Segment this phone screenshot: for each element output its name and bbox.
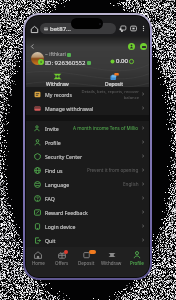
button[interactable]: Reward Feedback <box>26 205 149 219</box>
button[interactable]: Back <box>27 41 37 51</box>
staticText: English <box>123 181 139 187</box>
staticText: Invite <box>45 125 59 132</box>
staticText: FAQ <box>45 195 55 202</box>
staticText: Manage withdrawal <box>45 105 94 112</box>
button[interactable]: FAQ <box>26 191 149 205</box>
button[interactable]: Invite <box>26 121 149 135</box>
staticText: My records <box>45 91 73 98</box>
button[interactable]: Home <box>28 23 40 35</box>
button[interactable]: Deposit <box>74 247 99 268</box>
staticText: Quit <box>45 237 56 244</box>
staticText: Home <box>32 260 45 266</box>
staticText: Profile <box>130 260 144 266</box>
button[interactable]: Security Center <box>26 149 149 163</box>
button[interactable]: My records <box>26 87 149 101</box>
button[interactable]: bet87... <box>40 23 116 34</box>
staticText: Find us <box>45 167 63 174</box>
staticText: Details, bets, reports, recover balance <box>81 89 139 100</box>
staticText: ~ ifthkari <box>45 51 66 58</box>
button[interactable]: Login device <box>26 219 149 233</box>
button[interactable]: More options <box>139 24 148 33</box>
staticText: Login device <box>45 223 76 230</box>
staticText: Withdraw <box>46 81 69 88</box>
staticText: ID: 926360552 <box>45 59 86 67</box>
staticText: Offers <box>55 260 69 266</box>
button[interactable]: Deposit <box>94 71 134 88</box>
button[interactable]: Quit <box>26 233 149 247</box>
staticText: Security Center <box>45 153 83 160</box>
button[interactable]: Language <box>26 177 149 191</box>
button[interactable]: Support <box>128 43 135 50</box>
button[interactable]: Profile <box>26 135 149 149</box>
staticText: Deposit <box>78 260 95 266</box>
staticText: Language <box>45 181 70 188</box>
button[interactable]: Home <box>26 247 50 268</box>
button[interactable]: Find us <box>26 163 149 177</box>
staticText: Prevent it from opening <box>87 167 139 173</box>
button[interactable]: Manage withdrawal <box>26 101 149 115</box>
staticText: Reward Feedback <box>45 209 88 216</box>
staticText: Deposit <box>105 81 124 88</box>
button[interactable]: Offers <box>50 247 74 268</box>
staticText: Profile <box>45 139 61 146</box>
staticText: bet87... <box>50 25 71 33</box>
button[interactable]: Withdraw <box>37 71 77 88</box>
button[interactable]: Withdraw <box>99 247 124 268</box>
button[interactable]: Profile <box>124 247 149 268</box>
button[interactable]: Saved pages <box>117 23 128 34</box>
staticText: Withdraw <box>101 260 122 266</box>
button[interactable]: Messages <box>140 43 147 50</box>
staticText: A month income Tens of Millio <box>73 125 139 131</box>
staticText: 0.00 <box>116 57 128 65</box>
button[interactable]: Tabs <box>128 23 139 34</box>
